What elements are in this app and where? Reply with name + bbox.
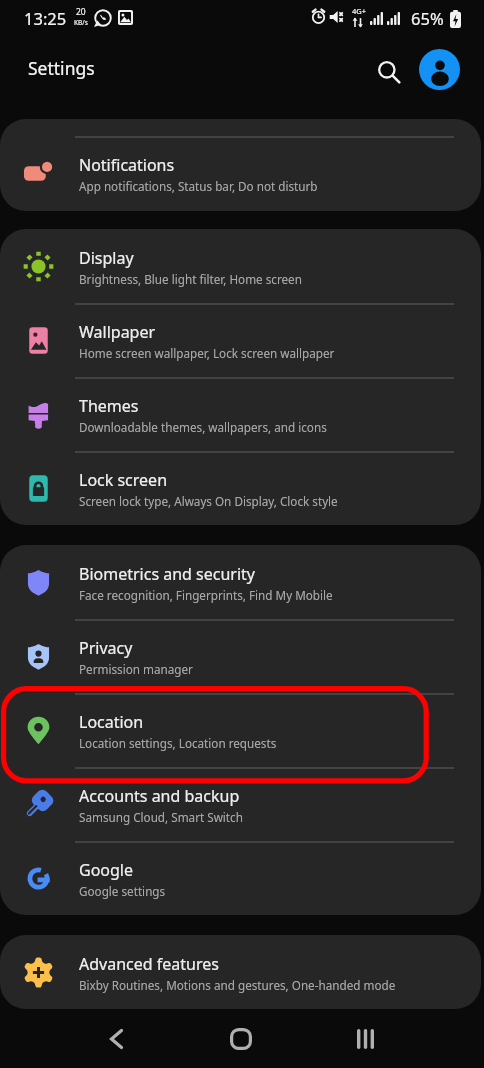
staticText: Brightness, Blue light filter, Home scre… [79,271,302,287]
staticText: Downloadable themes, wallpapers, and ico… [79,419,327,435]
staticText: Lock screen [79,469,168,491]
button[interactable]: Display [0,229,481,303]
staticText: Google settings [79,883,166,899]
staticText: Location [79,711,144,733]
staticText: Accounts and backup [79,785,240,807]
staticText: Wallpaper [79,321,156,343]
staticText: Themes [79,395,139,417]
button[interactable]: Privacy [0,619,481,693]
staticText: Privacy [79,637,133,659]
staticText: KB/s [74,18,88,27]
staticText: Location settings, Location requests [79,735,277,751]
staticText: 13:25 [24,7,67,29]
button[interactable]: Accounts and backup [0,767,481,841]
button[interactable]: Biometrics and security [0,545,481,619]
button[interactable]: Location [0,693,481,767]
staticText: Display [79,247,134,269]
button[interactable]: Back [88,1019,144,1059]
button[interactable]: Advanced features [0,935,481,1009]
button[interactable]: Search [367,50,411,94]
staticText: Google [79,859,134,881]
staticText: 20 [76,6,86,18]
staticText: Face recognition, Fingerprints, Find My … [79,587,333,603]
staticText: Biometrics and security [79,563,256,585]
staticText: 65% [411,7,444,29]
staticText: Home screen wallpaper, Lock screen wallp… [79,345,335,361]
button[interactable]: Account [419,49,460,90]
staticText: Screen lock type, Always On Display, Clo… [79,493,338,509]
button[interactable]: Wallpaper [0,303,481,377]
staticText: App notifications, Status bar, Do not di… [79,178,318,194]
button[interactable]: Google [0,841,481,915]
button[interactable]: Lock screen [0,451,481,525]
staticText: Bixby Routines, Motions and gestures, On… [79,977,396,993]
button[interactable]: Home [213,1019,269,1059]
staticText: Permission manager [79,661,193,677]
staticText: Notifications [79,154,175,176]
button[interactable]: Notifications [0,136,481,210]
staticText: Settings [28,56,95,80]
staticText: Samsung Cloud, Smart Switch [79,809,243,825]
button[interactable]: Recent apps [337,1019,393,1059]
staticText: 4G+ [352,6,367,16]
button[interactable]: Themes [0,377,481,451]
staticText: Advanced features [79,953,219,975]
